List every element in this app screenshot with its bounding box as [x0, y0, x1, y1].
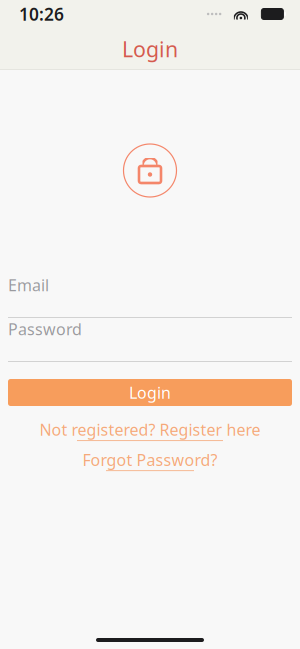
staticText: Email [8, 274, 49, 296]
staticText: Not registered? Register here [39, 419, 260, 440]
staticText: Forgot Password? [82, 449, 217, 470]
button[interactable]: Login [8, 379, 292, 406]
staticText: Login [129, 382, 171, 403]
staticText: Password [8, 318, 82, 340]
staticText: 10:26 [19, 2, 64, 25]
button[interactable]: Not registered? Register here [8, 419, 292, 441]
staticText: Login [122, 35, 178, 63]
button[interactable]: Forgot Password? [8, 449, 292, 471]
